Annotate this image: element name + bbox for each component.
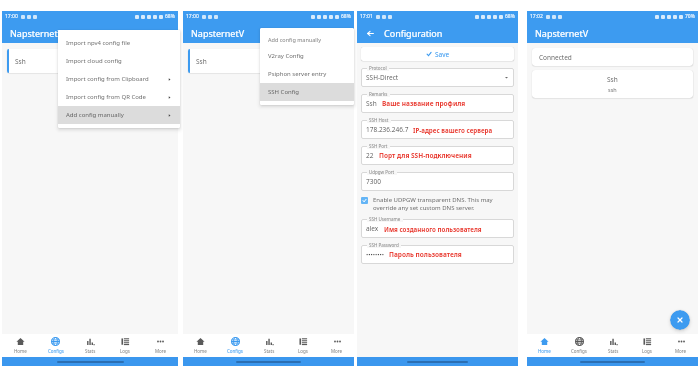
staticText: 17:02 — [530, 13, 543, 20]
staticText: 68% — [165, 13, 175, 20]
staticText: V2ray Config — [268, 52, 304, 60]
button[interactable]: Add config manually — [58, 106, 180, 124]
button[interactable]: Stats — [252, 334, 286, 357]
staticText: SSH Port — [369, 143, 388, 149]
staticText: SSH Host — [369, 117, 389, 123]
staticText: alex — [366, 224, 379, 233]
button[interactable]: Configs — [562, 334, 596, 357]
button[interactable]: Configs — [38, 334, 73, 357]
button[interactable]: More — [320, 334, 354, 357]
staticText: Logs — [298, 348, 309, 354]
staticText: Protocol — [369, 65, 387, 71]
button[interactable]: Logs — [630, 334, 664, 357]
staticText: 70% — [685, 13, 695, 20]
staticText: Save — [435, 50, 450, 59]
button[interactable]: Import cloud config — [58, 52, 180, 70]
staticText: Enable UDPGW transparent DNS. This may o… — [373, 196, 514, 212]
button[interactable]: 22 — [361, 146, 514, 165]
staticText: ssh — [608, 86, 617, 93]
staticText: SSH-Direct — [366, 73, 399, 82]
staticText: NapsternetV — [535, 27, 589, 39]
staticText: Home — [14, 348, 27, 354]
staticText: 17:00 — [5, 13, 18, 20]
button[interactable]: Back — [362, 25, 378, 41]
button[interactable]: •••••••• — [361, 245, 514, 264]
button[interactable]: SSH Config — [260, 83, 354, 101]
button[interactable]: SSH-Direct — [361, 68, 514, 87]
staticText: Configuration — [384, 27, 443, 39]
button[interactable]: Connected — [532, 48, 693, 66]
staticText: Stats — [608, 348, 619, 354]
button[interactable]: Configs — [218, 334, 252, 357]
button[interactable]: Import config from QR Code — [58, 88, 180, 106]
staticText: Пароль пользователя — [389, 250, 462, 259]
staticText: SSH Password — [369, 242, 399, 248]
staticText: SSH Username — [369, 216, 401, 222]
staticText: 17:00 — [186, 13, 199, 20]
button[interactable]: Import npv4 config file — [58, 34, 180, 52]
staticText: Import config from Clipboard — [66, 75, 149, 83]
button[interactable]: Home — [527, 334, 562, 357]
button[interactable]: Home — [2, 334, 38, 357]
button[interactable]: Disconnect — [670, 310, 690, 330]
staticText: 7300 — [366, 177, 381, 186]
staticText: More — [675, 348, 687, 354]
staticText: IP-адрес вашего сервера — [413, 126, 493, 134]
button[interactable]: Stats — [596, 334, 630, 357]
staticText: 22 — [366, 151, 374, 160]
button[interactable]: Enable UDPGW transparent DNS. This may o… — [361, 196, 514, 212]
staticText: Connected — [539, 53, 572, 62]
button[interactable]: Save — [361, 47, 514, 61]
button[interactable]: 7300 — [361, 172, 514, 191]
staticText: Ssh — [15, 57, 26, 66]
staticText: Ssh — [196, 57, 207, 66]
staticText: Logs — [642, 348, 653, 354]
button[interactable]: Ssh — [188, 49, 349, 73]
staticText: Udpgw Port — [369, 169, 395, 175]
staticText: Import config from QR Code — [66, 93, 146, 101]
staticText: More — [155, 348, 167, 354]
staticText: Home — [538, 348, 551, 354]
button[interactable]: Psiphon server entry — [260, 65, 354, 83]
button[interactable]: Home — [183, 334, 218, 357]
staticText: Add config manually — [268, 36, 321, 43]
button[interactable]: Logs — [286, 334, 320, 357]
button[interactable]: Stats — [73, 334, 108, 357]
staticText: Configs — [571, 348, 587, 354]
staticText: •••••••• — [366, 251, 385, 259]
button[interactable]: V2ray Config — [260, 47, 354, 65]
staticText: 68% — [341, 13, 351, 20]
staticText: Import cloud config — [66, 57, 122, 65]
button[interactable]: Ssh — [532, 70, 693, 98]
staticText: NapsternetV — [10, 27, 64, 39]
staticText: Configs — [48, 348, 64, 354]
staticText: Configs — [227, 348, 243, 354]
staticText: Порт для SSH-подключения — [379, 151, 472, 160]
staticText: Ssh — [366, 99, 377, 108]
staticText: Logs — [120, 348, 131, 354]
staticText: Stats — [264, 348, 275, 354]
staticText: Import npv4 config file — [66, 39, 131, 47]
staticText: Home — [194, 348, 207, 354]
staticText: Имя созданного пользователя — [384, 225, 482, 233]
staticText: Remarks — [369, 91, 388, 97]
staticText: Add config manually — [66, 111, 124, 119]
button[interactable]: More — [664, 334, 698, 357]
button[interactable]: Ssh — [7, 49, 173, 73]
staticText: Ssh — [607, 75, 618, 84]
button[interactable]: 178.236.246.7 — [361, 120, 514, 139]
staticText: SSH Config — [268, 88, 300, 96]
button[interactable]: More — [143, 334, 178, 357]
staticText: 178.236.246.7 — [366, 125, 409, 134]
staticText: NapsternetV — [191, 27, 245, 39]
staticText: 17:01 — [360, 13, 373, 20]
staticText: Ваше название профиля — [382, 99, 466, 108]
button[interactable]: Logs — [108, 334, 143, 357]
button[interactable]: Ssh — [361, 94, 514, 113]
staticText: 68% — [505, 13, 515, 20]
staticText: More — [331, 348, 343, 354]
button[interactable]: alex — [361, 219, 514, 238]
staticText: Psiphon server entry — [268, 70, 327, 78]
staticText: Stats — [85, 348, 96, 354]
button[interactable]: Import config from Clipboard — [58, 70, 180, 88]
